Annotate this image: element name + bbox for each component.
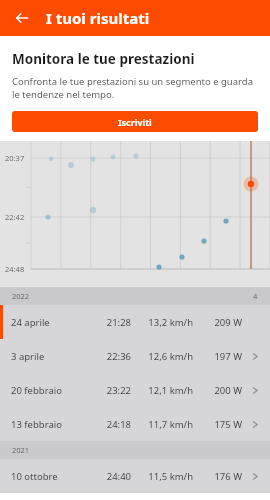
staticText: 22:42 (5, 212, 25, 222)
staticText: 2022 (12, 291, 30, 301)
button[interactable]: Iscriviti (12, 111, 258, 132)
staticText: 12,6 km/h (134, 350, 193, 363)
staticText: 12,1 km/h (134, 384, 193, 397)
button[interactable]: Back (6, 2, 38, 34)
staticText: 175 W (196, 418, 242, 431)
staticText: 11,5 km/h (134, 470, 193, 483)
staticText: 2021 (12, 445, 30, 455)
staticText: 197 W (196, 350, 242, 363)
staticText: 13,2 km/h (134, 316, 193, 329)
staticText: I tuoi risultati (46, 8, 150, 28)
staticText: 200 W (196, 384, 242, 397)
staticText: Monitora le tue prestazioni (12, 50, 195, 68)
staticText: 176 W (196, 470, 242, 483)
button[interactable]: 3 aprile (0, 339, 270, 373)
staticText: 20 febbraio (11, 384, 62, 397)
staticText: 22:36 (88, 350, 131, 363)
staticText: 13 febbraio (11, 418, 62, 431)
button[interactable]: 13 febbraio (0, 407, 270, 441)
button[interactable]: 24 aprile (0, 305, 270, 339)
staticText: Iscriviti (118, 116, 152, 128)
button[interactable]: 20 febbraio (0, 373, 270, 407)
staticText: 3 aprile (11, 350, 45, 363)
staticText: 21:28 (88, 316, 131, 329)
staticText: 11,7 km/h (134, 418, 193, 431)
staticText: 23:22 (88, 384, 131, 397)
staticText: 24:18 (88, 418, 131, 431)
staticText: 24 aprile (11, 316, 50, 329)
button[interactable]: 10 ottobre (0, 459, 270, 493)
staticText: 10 ottobre (11, 470, 58, 483)
staticText: 24:48 (5, 264, 25, 274)
staticText: 20:37 (5, 153, 25, 163)
staticText: 24:40 (88, 470, 131, 483)
staticText: 209 W (196, 316, 242, 329)
staticText: 4 (253, 291, 258, 301)
staticText: Confronta le tue prestazioni su un segme… (12, 75, 256, 101)
